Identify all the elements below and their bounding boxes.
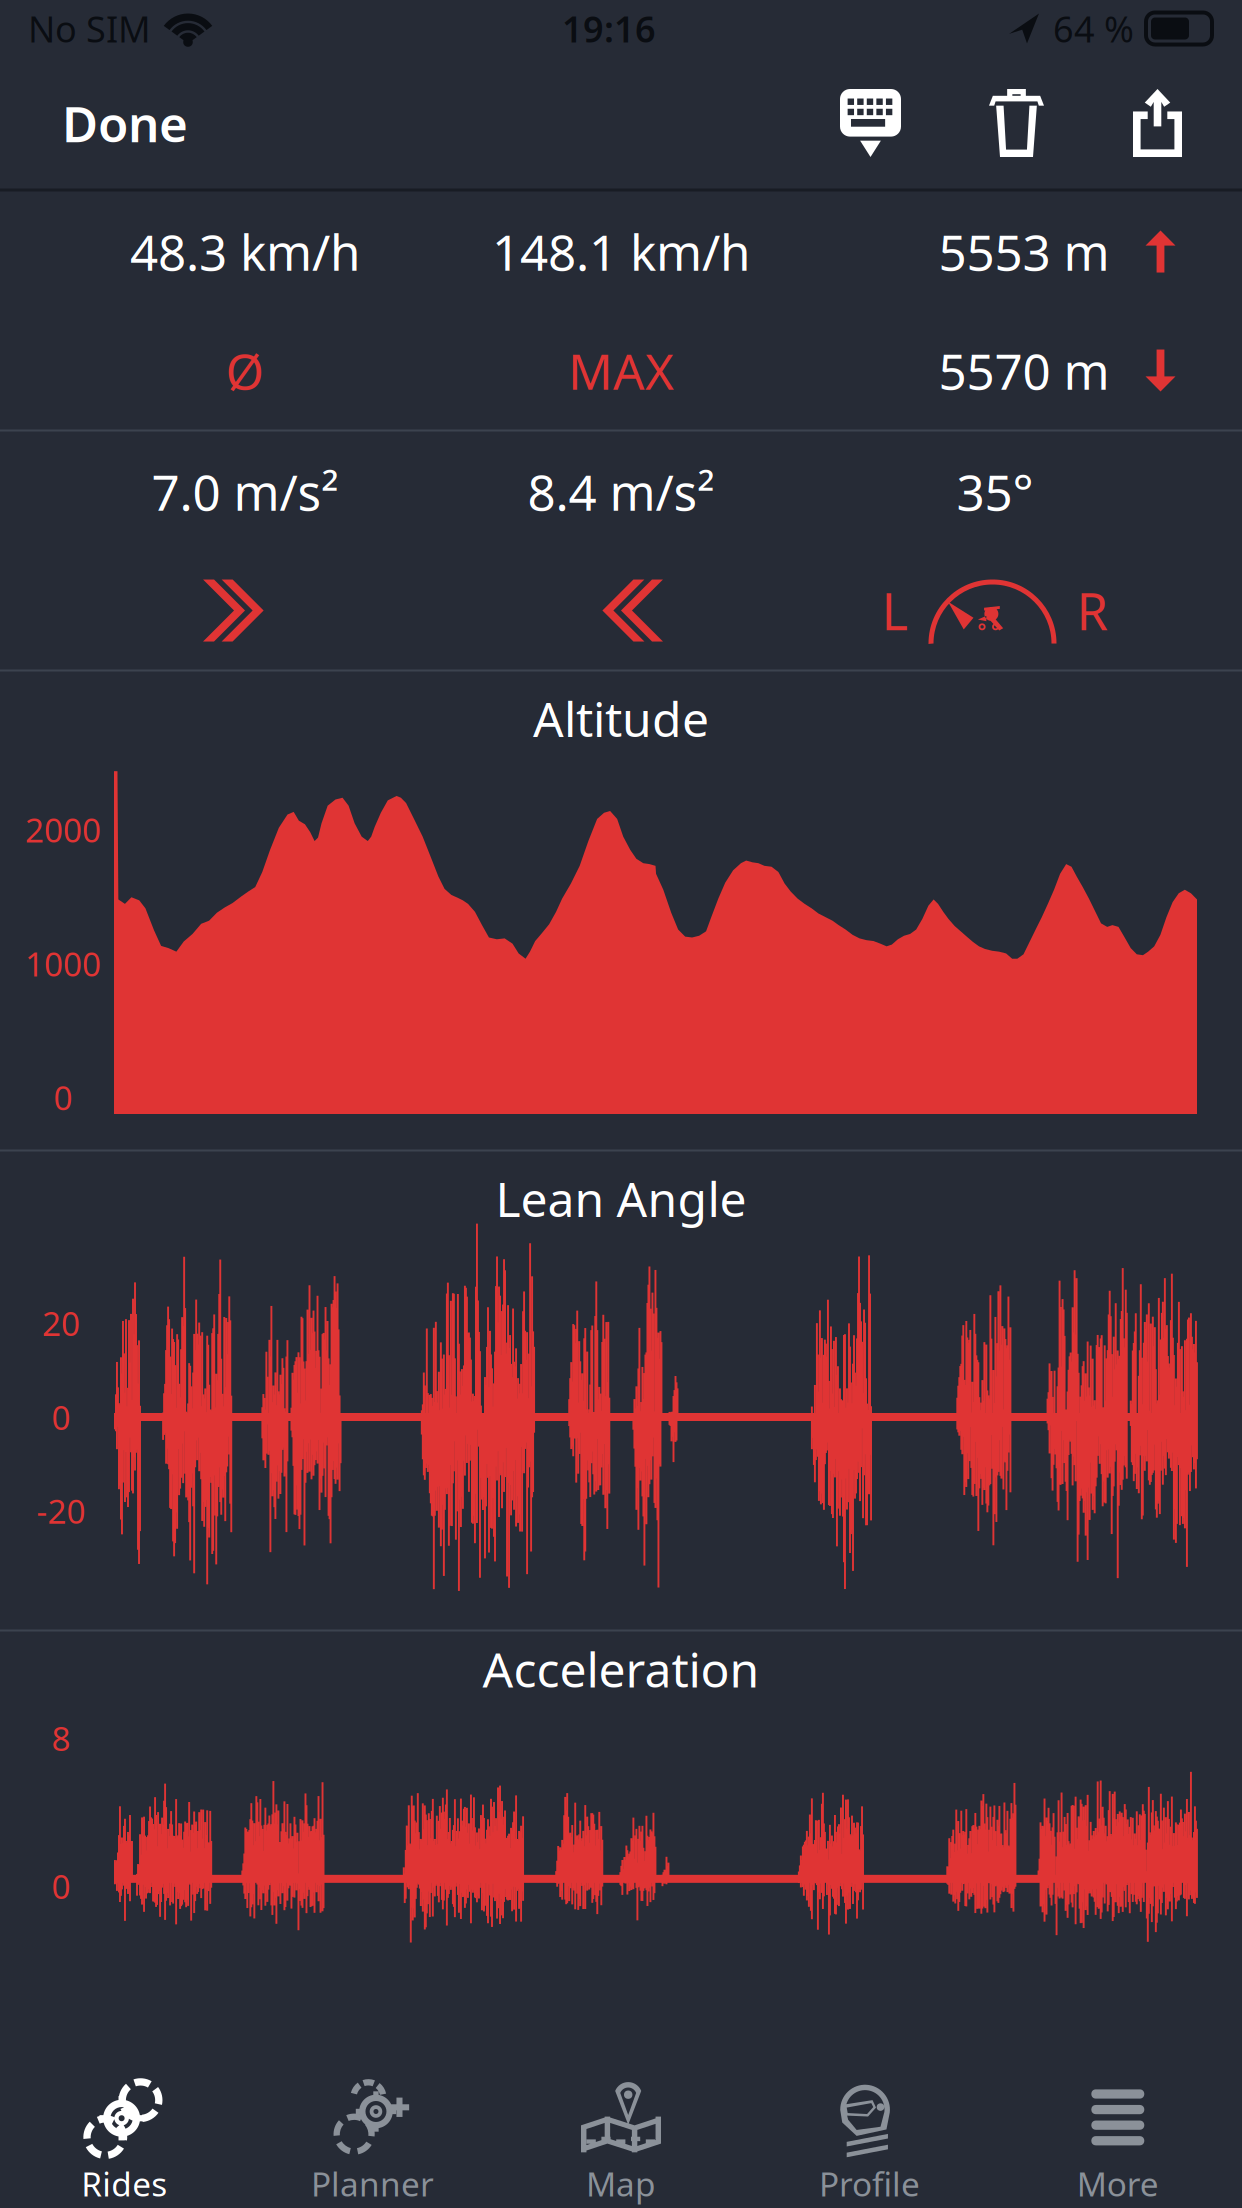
staticText: 7.0 m/s² (151, 459, 338, 524)
staticText: More (1077, 2161, 1159, 2206)
staticText: Rides (81, 2161, 167, 2206)
staticText: 0 (51, 1395, 70, 1439)
staticText: No SIM (28, 5, 151, 52)
button[interactable]: Rides (0, 2062, 248, 2208)
staticText: Ø (225, 338, 264, 403)
staticText: 2000 (25, 807, 101, 852)
button[interactable]: Hide keyboard (796, 57, 945, 188)
button[interactable]: Done (0, 57, 218, 188)
staticText: 5553 m (938, 219, 1109, 284)
staticText: 8 (51, 1716, 70, 1760)
staticText: Lean Angle (495, 1167, 746, 1230)
staticText: Altitude (533, 687, 709, 750)
staticText: 0 (53, 1075, 72, 1119)
staticText: 35° (956, 459, 1033, 524)
staticText: 19:16 (562, 5, 656, 52)
button[interactable]: Planner (248, 2062, 497, 2208)
staticText: 20 (42, 1301, 80, 1345)
button[interactable]: Profile (745, 2062, 994, 2208)
staticText: 148.1 km/h (492, 219, 750, 284)
staticText: Planner (311, 2161, 434, 2206)
staticText: Profile (819, 2161, 920, 2206)
staticText: Done (62, 90, 188, 156)
staticText: 64 % (1053, 5, 1134, 52)
staticText: 1000 (25, 941, 101, 986)
staticText: L (881, 577, 908, 644)
staticText: 8.4 m/s² (527, 459, 714, 524)
staticText: 5570 m (938, 338, 1109, 403)
staticText: 48.3 km/h (130, 219, 360, 284)
button[interactable]: More (994, 2062, 1242, 2208)
button[interactable]: Delete (945, 57, 1088, 188)
staticText: MAX (568, 338, 674, 403)
button[interactable]: Map (497, 2062, 745, 2208)
staticText: Acceleration (482, 1637, 759, 1701)
staticText: -20 (36, 1489, 85, 1533)
button[interactable]: Share (1088, 57, 1242, 188)
staticText: 0 (51, 1864, 70, 1908)
staticText: R (1076, 577, 1108, 644)
staticText: Map (586, 2161, 656, 2206)
